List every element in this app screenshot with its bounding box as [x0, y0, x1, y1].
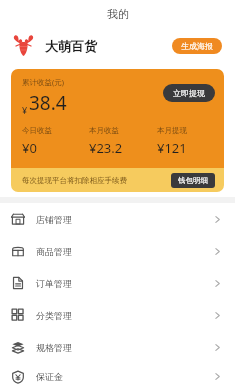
staticText: 本月提现: [157, 126, 187, 135]
staticText: 38.4: [29, 90, 67, 116]
staticText: 今日收益: [22, 126, 52, 135]
staticText: 商品管理: [36, 246, 72, 257]
button[interactable]: 立即提现: [163, 84, 215, 102]
button[interactable]: 店铺管理: [0, 203, 235, 235]
staticText: 本月收益: [89, 126, 119, 135]
staticText: 我的: [107, 7, 129, 21]
staticText: 生成海报: [181, 41, 213, 51]
staticText: 立即提现: [173, 88, 205, 98]
staticText: 累计收益(元): [22, 77, 64, 87]
button[interactable]: 保证金: [0, 363, 235, 390]
button[interactable]: 钱包明细: [171, 173, 215, 188]
staticText: 保证金: [36, 371, 63, 382]
staticText: ¥121: [157, 139, 187, 157]
staticText: 订单管理: [36, 278, 72, 289]
staticText: ¥0: [22, 139, 37, 157]
button[interactable]: 订单管理: [0, 267, 235, 299]
staticText: ¥23.2: [89, 139, 123, 157]
button[interactable]: 分类管理: [0, 299, 235, 331]
staticText: 每次提现平台将扣除相应手续费: [22, 176, 127, 185]
button[interactable]: 生成海报: [172, 38, 222, 54]
staticText: ¥: [22, 104, 28, 116]
button[interactable]: 规格管理: [0, 331, 235, 363]
staticText: 店铺管理: [36, 214, 72, 225]
staticText: 分类管理: [36, 310, 72, 321]
staticText: 规格管理: [36, 342, 72, 353]
button[interactable]: 商品管理: [0, 235, 235, 267]
staticText: 大萌百货: [45, 38, 97, 54]
staticText: 钱包明细: [178, 176, 208, 185]
